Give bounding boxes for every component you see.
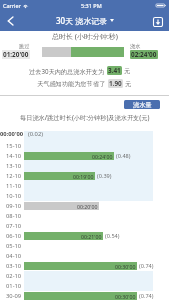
staticText: 10-10 bbox=[6, 192, 22, 200]
staticText: 30天 浇水记录 bbox=[56, 15, 108, 26]
staticText: 00:20'00 bbox=[77, 203, 98, 210]
staticText: 跳过 bbox=[19, 43, 30, 50]
staticText: 元 bbox=[125, 80, 132, 88]
staticText: 14-10 bbox=[6, 152, 22, 160]
staticText: 07-10 bbox=[6, 222, 22, 230]
staticText: 11-10 bbox=[6, 182, 22, 190]
staticText: (0.74) bbox=[139, 292, 154, 300]
button[interactable]: Save bbox=[150, 14, 166, 30]
staticText: 00:24'00 bbox=[92, 153, 113, 160]
staticText: 1.90 bbox=[109, 79, 122, 88]
staticText: (0.39) bbox=[97, 172, 112, 180]
staticText: 12-10 bbox=[6, 172, 22, 180]
staticText: 00:00'00 bbox=[0, 130, 24, 138]
staticText: 总时长 (小时:分钟:秒) bbox=[52, 32, 118, 42]
staticText: Carrier bbox=[3, 2, 21, 9]
staticText: 01:20'00 bbox=[3, 50, 29, 59]
staticText: (0.48) bbox=[116, 152, 131, 160]
staticText: (0.54) bbox=[105, 232, 120, 240]
staticText: 03-10 bbox=[6, 262, 22, 270]
staticText: 00:19'00 bbox=[73, 173, 94, 180]
staticText: 00:30'00 bbox=[115, 263, 136, 270]
staticText: 3.41 bbox=[108, 66, 121, 75]
staticText: 过去30天内的总浇水开支为 bbox=[29, 67, 105, 75]
staticText: 00:30'00 bbox=[115, 293, 136, 300]
staticText: 08-10 bbox=[6, 212, 22, 220]
staticText: 02:24'00 bbox=[131, 50, 157, 59]
staticText: 每日浇水/跳过时长(小时:分钟秒)及浇水开支(元) bbox=[20, 113, 150, 121]
staticText: 浇水量 bbox=[133, 101, 152, 109]
staticText: (0.74) bbox=[139, 262, 154, 270]
staticText: 天气感知功能为您节省了 bbox=[37, 80, 106, 88]
staticText: 13-10 bbox=[6, 162, 22, 170]
staticText: 00:21'00 bbox=[81, 233, 102, 240]
staticText: 30-09 bbox=[6, 292, 22, 300]
staticText: 05-10 bbox=[6, 242, 22, 250]
staticText: (0.02) bbox=[28, 130, 43, 138]
staticText: 元 bbox=[124, 67, 131, 75]
staticText: 09-10 bbox=[6, 202, 22, 210]
staticText: 5:31 PM bbox=[81, 2, 102, 9]
staticText: 02-10 bbox=[6, 272, 22, 280]
button[interactable]: Back bbox=[0, 11, 20, 31]
staticText: 15-10 bbox=[6, 142, 22, 150]
staticText: 01-10 bbox=[6, 282, 22, 290]
staticText: 04-10 bbox=[6, 252, 22, 260]
staticText: 06-10 bbox=[6, 232, 22, 240]
button[interactable]: 30天 浇水记录 bbox=[56, 15, 114, 26]
button[interactable]: 浇水量 bbox=[124, 100, 160, 109]
staticText: 浇水 bbox=[130, 43, 141, 50]
